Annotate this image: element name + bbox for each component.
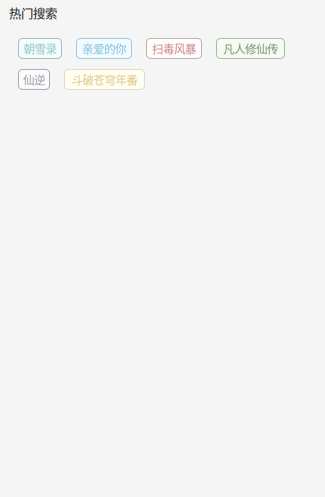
staticText: 凡人修仙传 bbox=[223, 40, 278, 57]
button[interactable]: 扫毒风暴 bbox=[146, 38, 202, 59]
button[interactable]: 朝雪录 bbox=[18, 38, 62, 59]
button[interactable]: 仙逆 bbox=[18, 69, 50, 90]
staticText: 热门搜索 bbox=[9, 4, 57, 22]
staticText: 斗破苍穹年番 bbox=[71, 71, 137, 88]
staticText: 朝雪录 bbox=[23, 40, 56, 57]
staticText: 仙逆 bbox=[23, 71, 45, 88]
staticText: 亲爱的你 bbox=[82, 40, 126, 57]
button[interactable]: 斗破苍穹年番 bbox=[64, 69, 145, 90]
button[interactable]: 凡人修仙传 bbox=[216, 38, 285, 59]
button[interactable]: 亲爱的你 bbox=[76, 38, 132, 59]
staticText: 扫毒风暴 bbox=[152, 40, 196, 57]
